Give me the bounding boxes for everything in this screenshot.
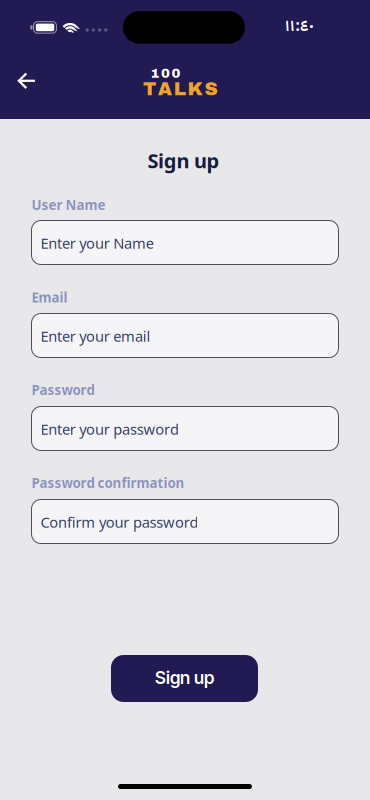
staticText: Password confirmation xyxy=(31,474,184,492)
button[interactable]: Back xyxy=(8,63,45,98)
staticText: 0 xyxy=(161,66,170,80)
staticText: K xyxy=(188,79,203,99)
button[interactable]: Sign up xyxy=(111,655,258,702)
staticText: Sign up xyxy=(155,667,214,688)
staticText: Email xyxy=(31,288,67,306)
staticText: Enter your password xyxy=(40,419,179,439)
staticText: Enter your email xyxy=(40,326,150,346)
staticText: Enter your Name xyxy=(40,233,154,253)
staticText: Password xyxy=(31,381,94,399)
staticText: ١١:٤٠ xyxy=(285,13,314,38)
staticText: S xyxy=(204,79,217,99)
staticText: 1 xyxy=(151,66,160,80)
staticText: A xyxy=(158,79,172,99)
staticText: 0 xyxy=(171,66,180,80)
staticText: L xyxy=(174,79,186,99)
button[interactable]: Enter your Name xyxy=(31,220,339,265)
staticText: T xyxy=(143,79,156,99)
button[interactable]: Enter your email xyxy=(31,313,339,358)
staticText: Sign up xyxy=(147,147,220,174)
staticText: User Name xyxy=(31,196,105,214)
button[interactable]: Confirm your password xyxy=(31,499,339,544)
button[interactable]: Enter your password xyxy=(31,406,339,451)
staticText: Confirm your password xyxy=(40,512,198,532)
